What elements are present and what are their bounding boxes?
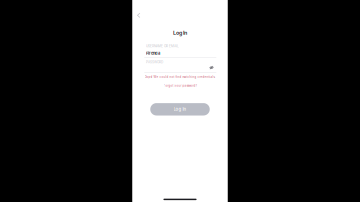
staticText: Forgot your password? [163, 84, 196, 87]
button[interactable]: Show password [208, 64, 215, 71]
staticText: PASSWORD [146, 60, 163, 64]
button[interactable]: Forgot your password? [163, 84, 196, 87]
staticText: Oops! We could not find matching credent… [144, 75, 215, 79]
staticText: Log In [173, 30, 187, 36]
staticText: Firenda [146, 51, 160, 56]
staticText: Log In [173, 107, 186, 112]
button[interactable]: Log In [150, 103, 210, 115]
button[interactable]: Back [134, 11, 143, 20]
staticText: USERNAME OR EMAIL [146, 44, 179, 48]
